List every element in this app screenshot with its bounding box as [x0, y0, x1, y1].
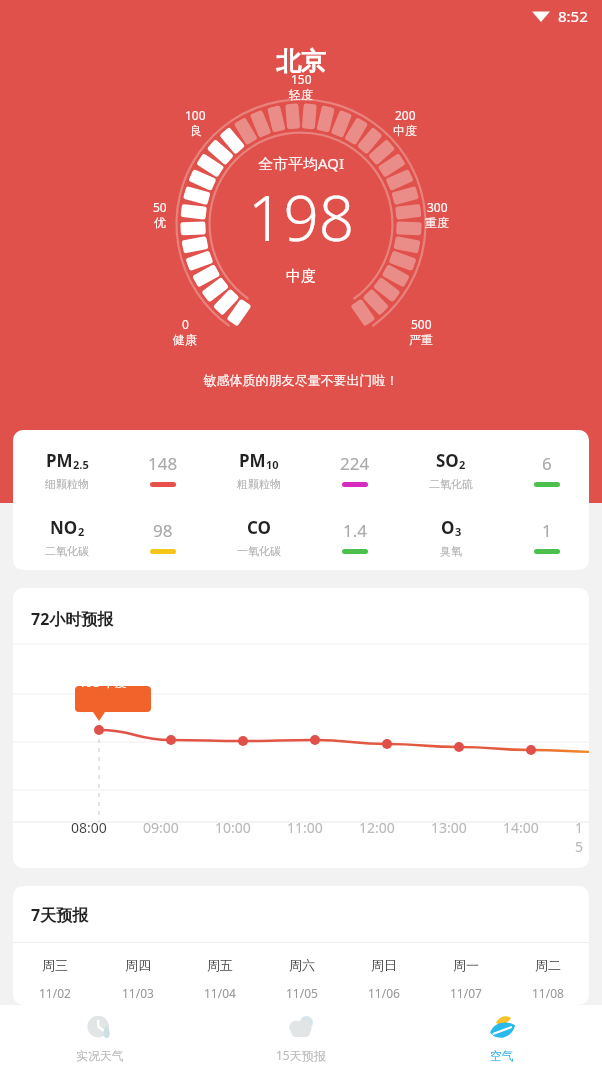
button[interactable]: 15天预报: [200, 1005, 401, 1071]
staticText: 周六: [289, 957, 315, 973]
staticText: 周日: [371, 957, 397, 973]
staticText: 11/03: [122, 985, 154, 1001]
button[interactable]: PM: [13, 436, 205, 503]
staticText: 50: [153, 199, 167, 215]
staticText: 重度: [425, 215, 449, 230]
staticText: 14:00: [503, 818, 539, 837]
staticText: 周一: [453, 957, 479, 973]
staticText: 100: [185, 107, 206, 123]
staticText: 11:00: [287, 818, 323, 837]
staticText: PM: [46, 449, 73, 472]
staticText: 11/02: [39, 985, 71, 1001]
staticText: PM: [239, 449, 266, 472]
staticText: 臭氧: [440, 544, 462, 558]
button[interactable]: SO: [397, 436, 589, 503]
staticText: 08:00: [71, 818, 107, 837]
staticText: 周四: [125, 957, 151, 973]
staticText: 周五: [207, 957, 233, 973]
staticText: 2.5: [73, 457, 89, 472]
staticText: 198: [248, 175, 355, 259]
button[interactable]: 实况天气: [0, 1005, 200, 1071]
staticText: 6: [542, 452, 552, 475]
staticText: SO: [436, 449, 459, 472]
staticText: 15: [575, 818, 589, 856]
staticText: O: [441, 516, 455, 539]
staticText: 细颗粒物: [45, 477, 89, 491]
staticText: 良: [190, 123, 202, 138]
staticText: 2: [459, 457, 466, 472]
staticText: 严重: [409, 332, 433, 347]
staticText: 500: [411, 316, 432, 332]
staticText: 198 中度: [79, 674, 127, 690]
staticText: 200: [395, 107, 416, 123]
button[interactable]: CO: [205, 503, 397, 570]
staticText: 224: [340, 452, 370, 475]
staticText: 98: [153, 519, 173, 542]
staticText: 0: [182, 316, 189, 332]
staticText: 11/04: [204, 985, 236, 1001]
staticText: 空气: [490, 1048, 514, 1063]
staticText: 11/07: [450, 985, 482, 1001]
staticText: 8:52: [558, 6, 588, 26]
staticText: 15天预报: [276, 1047, 326, 1063]
staticText: 健康: [173, 332, 197, 347]
staticText: 轻度: [289, 87, 313, 102]
staticText: 11/05: [286, 985, 318, 1001]
staticText: 二氧化硫: [429, 477, 473, 491]
button[interactable]: 空气: [401, 1005, 602, 1071]
staticText: 300: [427, 199, 448, 215]
staticText: 2: [78, 524, 85, 539]
staticText: 150: [291, 71, 312, 87]
staticText: 1.4: [343, 519, 368, 542]
button[interactable]: NO: [13, 503, 205, 570]
staticText: 中度: [286, 267, 316, 286]
staticText: 1: [542, 519, 552, 542]
staticText: 10: [266, 457, 279, 472]
staticText: 实况天气: [76, 1048, 124, 1063]
staticText: 11/06: [368, 985, 400, 1001]
staticText: 周三: [42, 957, 68, 973]
button[interactable]: PM: [205, 436, 397, 503]
staticText: 10:00: [215, 818, 251, 837]
staticText: 粗颗粒物: [237, 477, 281, 491]
staticText: 3: [455, 524, 462, 539]
staticText: 7天预报: [31, 904, 89, 926]
staticText: 12:00: [359, 818, 395, 837]
staticText: 13:00: [431, 818, 467, 837]
staticText: 二氧化碳: [45, 544, 89, 558]
staticText: 09:00: [143, 818, 179, 837]
staticText: 优: [154, 215, 166, 230]
staticText: 周二: [535, 957, 561, 973]
staticText: 北京: [0, 46, 602, 77]
staticText: 全市平均AQI: [258, 153, 345, 173]
staticText: 72小时预报: [31, 608, 114, 630]
staticText: NO: [50, 516, 78, 539]
staticText: CO: [247, 516, 272, 539]
staticText: 敏感体质的朋友尽量不要出门啦！: [0, 372, 602, 388]
staticText: 148: [148, 452, 178, 475]
staticText: 中度: [393, 123, 417, 138]
staticText: 11/08: [532, 985, 564, 1001]
staticText: 一氧化碳: [237, 544, 281, 558]
button[interactable]: O: [397, 503, 589, 570]
